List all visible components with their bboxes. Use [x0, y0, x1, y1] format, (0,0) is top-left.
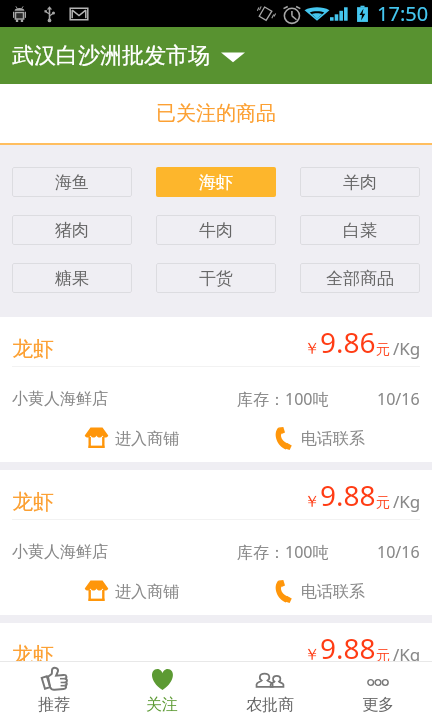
staticText: 海鱼 [55, 172, 89, 193]
staticText: 库存：100吨 [237, 541, 329, 563]
button[interactable]: 龙虾 [0, 623, 432, 720]
staticText: 推荐 [38, 695, 70, 715]
button[interactable]: 电话联系 [272, 415, 432, 462]
button[interactable]: 推荐 [0, 662, 108, 720]
staticText: 糖果 [55, 268, 89, 289]
staticText: 9.88 [320, 629, 376, 667]
staticText: 牛肉 [199, 220, 233, 241]
staticText: 已关注的商品 [156, 101, 276, 126]
button[interactable]: 武汉白沙洲批发市场 [0, 27, 432, 84]
staticText: ￥ [304, 645, 320, 665]
other: Select market [221, 45, 245, 67]
staticText: 进入商铺 [115, 429, 179, 449]
staticText: 猪肉 [55, 220, 89, 241]
staticText: 17:50 [377, 0, 429, 27]
staticText: 进入商铺 [115, 582, 179, 602]
staticText: 羊肉 [343, 172, 377, 193]
staticText: 小黄人海鲜店 [12, 542, 108, 562]
staticText: 小黄人海鲜店 [12, 389, 108, 409]
button[interactable]: 海鱼 [12, 167, 132, 197]
button[interactable]: 进入商铺 [84, 415, 216, 462]
staticText: 干货 [199, 268, 233, 289]
staticText: ￥ [304, 339, 320, 359]
staticText: /Kg [393, 337, 421, 360]
staticText: 元 [376, 494, 390, 512]
button[interactable]: 龙虾 [0, 317, 432, 462]
staticText: 武汉白沙洲批发市场 [12, 42, 210, 70]
staticText: 关注 [146, 695, 178, 715]
button[interactable]: 更多 [324, 662, 432, 720]
staticText: 9.88 [320, 476, 376, 514]
staticText: /Kg [393, 490, 421, 513]
button[interactable]: 羊肉 [300, 167, 420, 197]
staticText: ￥ [304, 492, 320, 512]
button[interactable]: 糖果 [12, 263, 132, 293]
staticText: 白菜 [343, 220, 377, 241]
staticText: 龙虾 [12, 336, 54, 362]
staticText: 海虾 [199, 172, 233, 193]
button[interactable]: 电话联系 [272, 568, 432, 615]
button[interactable]: 农批商 [216, 662, 324, 720]
staticText: 龙虾 [12, 489, 54, 515]
button[interactable]: 全部商品 [300, 263, 420, 293]
staticText: 小黄人海鲜店 [12, 695, 108, 715]
staticText: 元 [376, 647, 390, 665]
button[interactable]: 干货 [156, 263, 276, 293]
staticText: 9.86 [320, 323, 376, 361]
staticText: /Kg [393, 643, 421, 666]
button[interactable]: 海虾 [156, 167, 276, 197]
staticText: 农批商 [246, 695, 294, 715]
staticText: 10/16 [377, 388, 420, 410]
staticText: 电话联系 [301, 429, 365, 449]
staticText: 库存：100吨 [237, 388, 329, 410]
staticText: 全部商品 [326, 268, 394, 289]
staticText: 10/16 [377, 541, 420, 563]
button[interactable]: 猪肉 [12, 215, 132, 245]
staticText: 龙虾 [12, 642, 54, 668]
staticText: 库存：100吨 [237, 694, 329, 716]
button[interactable]: 牛肉 [156, 215, 276, 245]
staticText: 更多 [362, 695, 394, 715]
staticText: 电话联系 [301, 582, 365, 602]
staticText: 10/16 [377, 694, 420, 716]
button[interactable]: 进入商铺 [84, 568, 216, 615]
button[interactable]: 龙虾 [0, 470, 432, 615]
button[interactable]: 关注 [108, 662, 216, 720]
button[interactable]: 白菜 [300, 215, 420, 245]
staticText: 元 [376, 341, 390, 359]
